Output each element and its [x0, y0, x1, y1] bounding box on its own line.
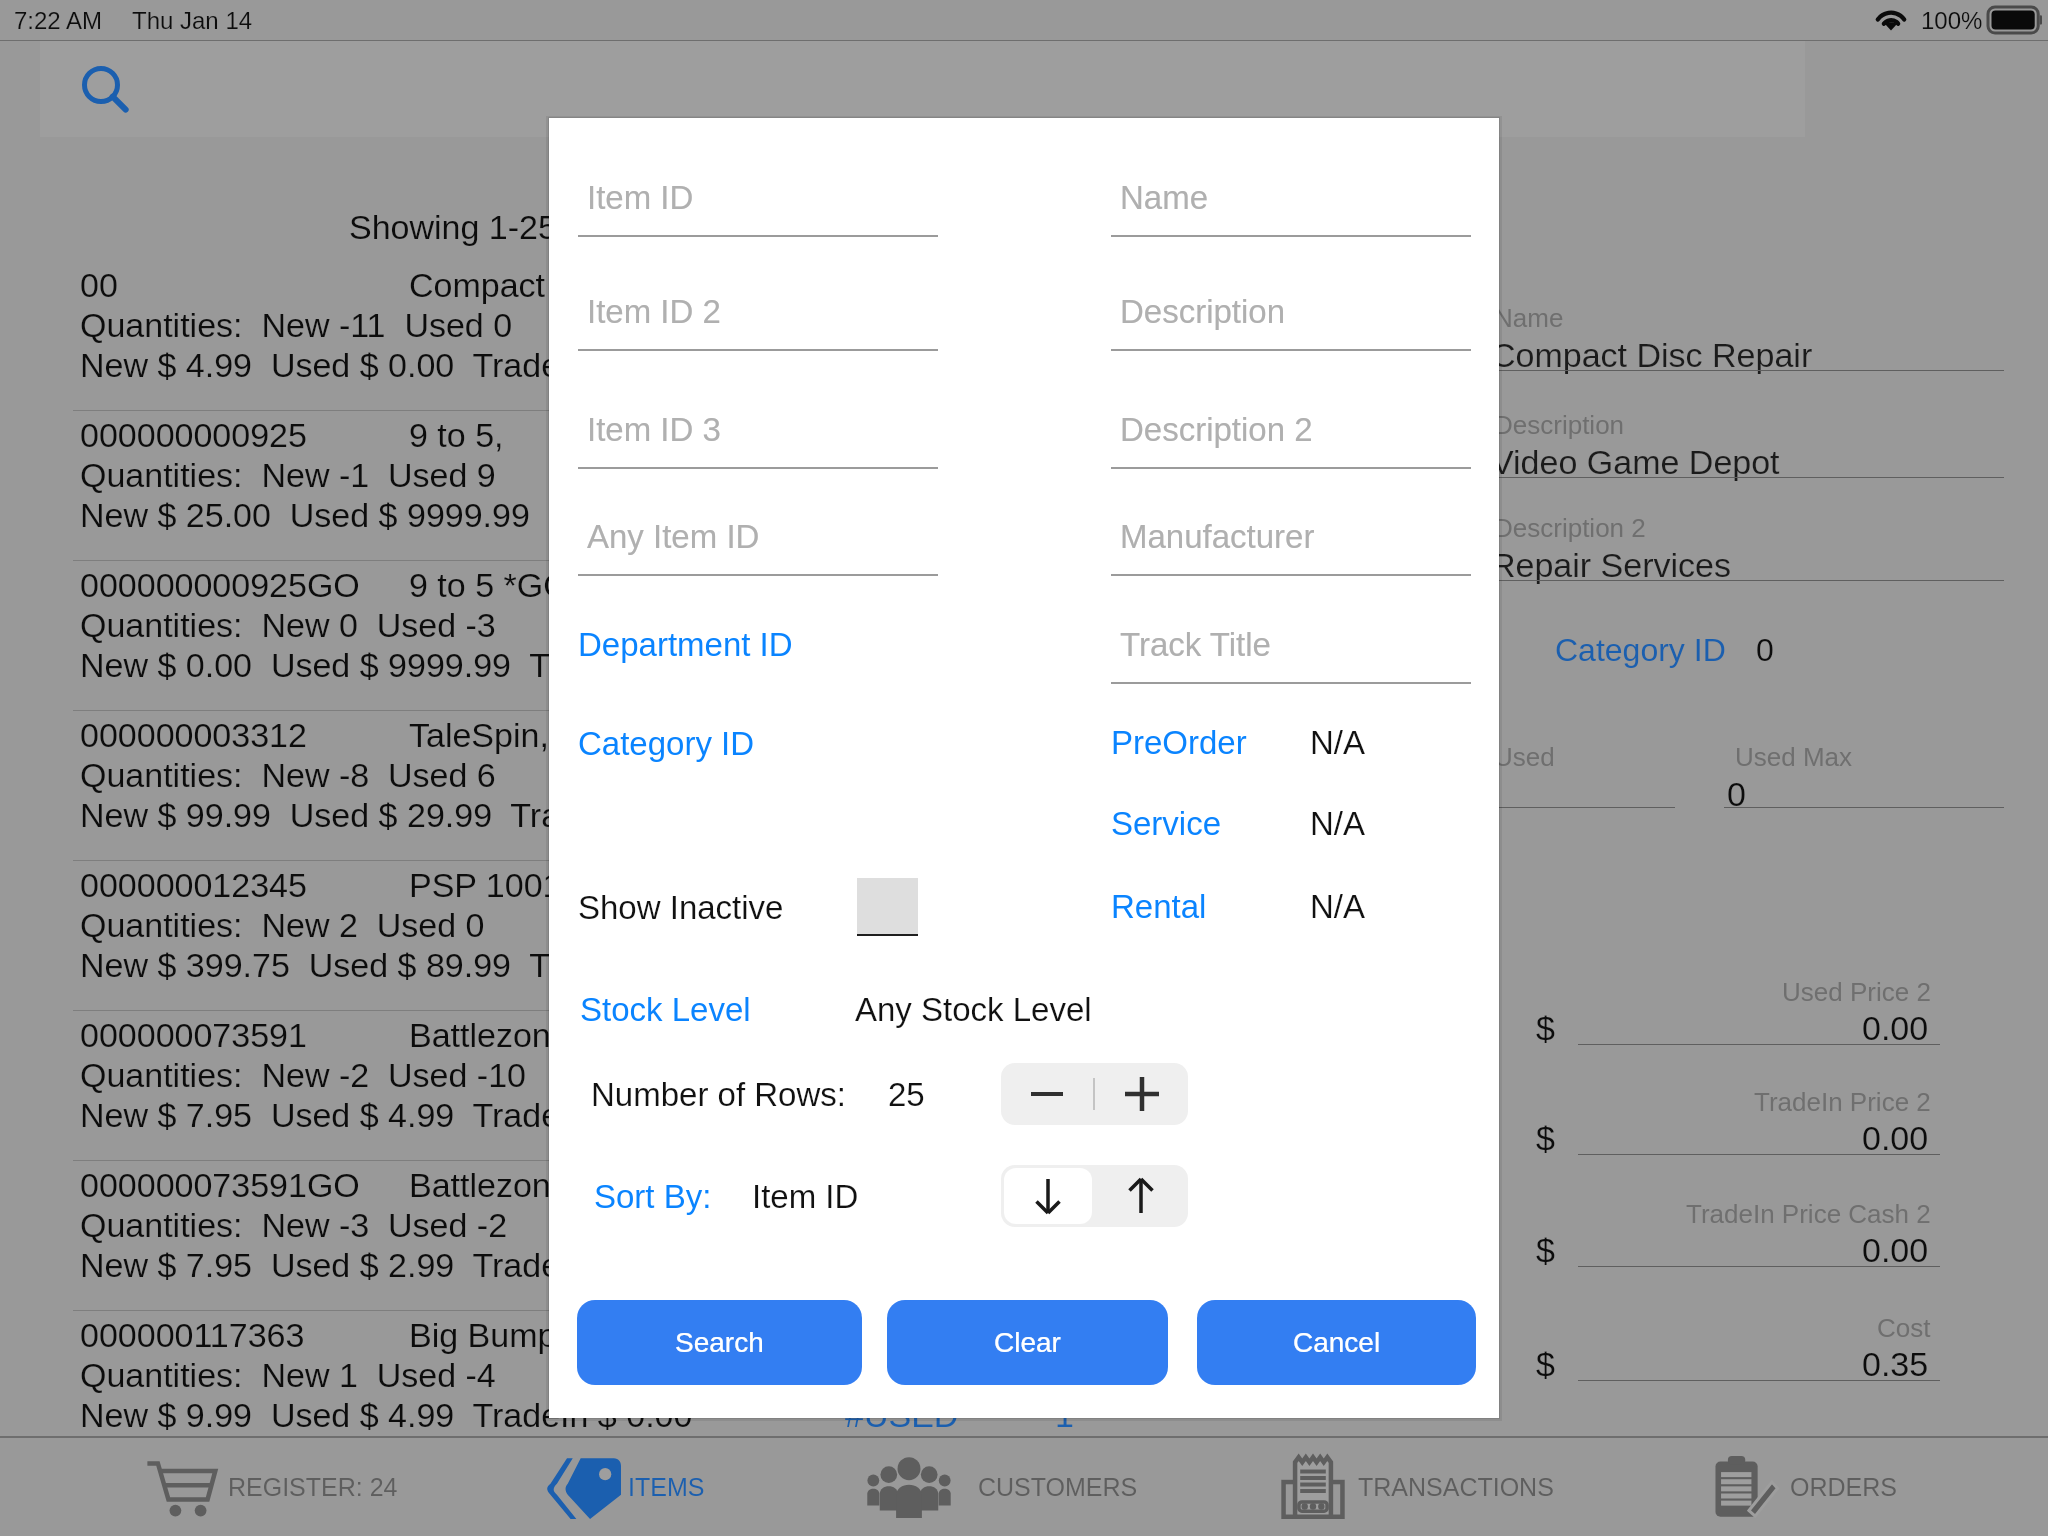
button[interactable]	[0, 1143, 1140, 1293]
button[interactable]	[0, 543, 1140, 693]
staticText: 000000000925	[80, 416, 307, 454]
staticText: Quantities: New 0 Used -3	[80, 606, 496, 644]
staticText: ORDERS	[1790, 1473, 1897, 1501]
button[interactable]: Rental	[1111, 870, 1451, 942]
button[interactable]: Description	[1111, 275, 1471, 351]
staticText: 0.00	[1862, 1119, 1929, 1157]
staticText: Description	[1120, 293, 1286, 330]
button[interactable]	[0, 693, 1140, 843]
button[interactable]: Decrease rows	[1001, 1063, 1093, 1125]
staticText: 1	[1055, 1096, 1074, 1134]
staticText: TradeIn Price 2	[1754, 1087, 1931, 1116]
button[interactable]: Cancel	[1197, 1300, 1476, 1385]
staticText: Sort By:	[594, 1178, 712, 1215]
staticText: Stock Level	[580, 991, 751, 1028]
staticText: 0	[1727, 775, 1746, 813]
button[interactable]: Show Inactive	[578, 871, 838, 943]
staticText: Number of Rows:	[591, 1076, 846, 1113]
staticText: Compact Disc Repair	[409, 266, 731, 304]
staticText: 9 to 5 *GO*	[409, 566, 583, 604]
staticText: Description 2	[1494, 513, 1646, 542]
staticText: Name	[1120, 179, 1209, 216]
staticText: 000000073591	[80, 1016, 307, 1054]
staticText: Description	[1494, 410, 1625, 439]
button[interactable]: REGISTER: 24	[120, 1438, 443, 1536]
button[interactable]: Sort By:	[594, 1160, 844, 1232]
staticText: 000000073591GO	[80, 1166, 360, 1204]
button[interactable]: Track Title	[1111, 608, 1471, 684]
button[interactable]	[0, 993, 1140, 1143]
button[interactable]: ORDERS	[1687, 1438, 2005, 1536]
staticText: New $ 399.75 Used $ 89.99 TradeIn $ 0.00	[80, 946, 750, 984]
button[interactable]: Department ID	[578, 608, 828, 680]
staticText: Service	[1111, 805, 1222, 842]
button[interactable]: Increase rows	[1095, 1063, 1188, 1125]
button[interactable]: Sort descending	[1001, 1165, 1094, 1227]
button[interactable]	[0, 843, 1140, 993]
staticText: 1	[1055, 1396, 1074, 1434]
staticText: Video Game Depot	[1491, 443, 1780, 481]
staticText: Battlezone *GO*	[409, 1166, 659, 1204]
button[interactable]: TRANSACTIONS	[1255, 1438, 1573, 1536]
button[interactable]: Sort ascending	[1094, 1165, 1188, 1227]
button[interactable]: Item ID 2	[578, 275, 938, 351]
staticText: 9 to 5,	[409, 416, 513, 454]
button[interactable]: Item ID 3	[578, 393, 938, 469]
button[interactable]: PreOrder	[1111, 706, 1451, 778]
button[interactable]: Description 2	[1111, 393, 1471, 469]
staticText: PSP 1001	[409, 866, 562, 904]
button[interactable]: Item ID	[578, 161, 938, 237]
button[interactable]: Category ID	[1555, 614, 1855, 686]
staticText: 000000012345	[80, 866, 307, 904]
button[interactable]: Category ID	[578, 707, 828, 779]
staticText: Item ID	[752, 1178, 859, 1215]
staticText: #USED	[845, 1096, 959, 1134]
button[interactable]: Stock Level	[580, 973, 830, 1045]
button[interactable]: Clear	[887, 1300, 1168, 1385]
staticText: Showing 1-25 of 3215	[349, 208, 680, 246]
button[interactable]: Service	[1111, 787, 1451, 859]
staticText: Repair Services	[1491, 546, 1731, 584]
button[interactable]: CUSTOMERS	[840, 1438, 1193, 1536]
staticText: 000000003312	[80, 716, 307, 754]
button[interactable]: Name	[1111, 161, 1471, 237]
staticText: Quantities: New -3 Used -2	[80, 1206, 508, 1244]
button[interactable]	[0, 393, 1140, 543]
staticText: Description 2	[1120, 411, 1313, 448]
staticText: New $ 7.95 Used $ 4.99 TradeIn $ 0.00	[80, 1096, 693, 1134]
staticText: Track Title	[1120, 626, 1271, 663]
staticText: New $ 0.00 Used $ 9999.99 TradeIn $ 0.00	[80, 646, 750, 684]
staticText: Quantities: New 2 Used 0	[80, 906, 485, 944]
button[interactable]: Manufacturer	[1111, 500, 1471, 576]
staticText: N/A	[1310, 805, 1366, 842]
staticText: Clear	[994, 1327, 1061, 1358]
button[interactable]: Search	[73, 61, 135, 123]
staticText: Show Inactive	[578, 889, 784, 926]
staticText: Cancel	[1293, 1327, 1381, 1358]
button[interactable]: Search	[577, 1300, 862, 1385]
staticText: Item ID 3	[587, 411, 721, 448]
staticText: Used Max	[1735, 742, 1853, 771]
staticText: 0	[1756, 632, 1774, 668]
staticText: Category ID	[578, 725, 755, 762]
button[interactable]: ITEMS	[523, 1438, 843, 1536]
staticText: New $ 4.99 Used $ 0.00 TradeIn $ 0.00	[80, 346, 693, 384]
button[interactable]	[0, 1293, 1140, 1436]
staticText: 0.00	[1862, 1231, 1929, 1269]
staticText: Category ID	[1555, 632, 1726, 668]
button[interactable]: Show inactive toggle	[857, 878, 918, 936]
staticText: TRANSACTIONS	[1358, 1473, 1554, 1501]
staticText: TradeIn Price Cash 2	[1686, 1199, 1931, 1228]
button[interactable]: Any Item ID	[578, 500, 938, 576]
staticText: CUSTOMERS	[978, 1473, 1138, 1501]
button[interactable]	[0, 243, 1140, 393]
staticText: Quantities: New -1 Used 9	[80, 456, 496, 494]
